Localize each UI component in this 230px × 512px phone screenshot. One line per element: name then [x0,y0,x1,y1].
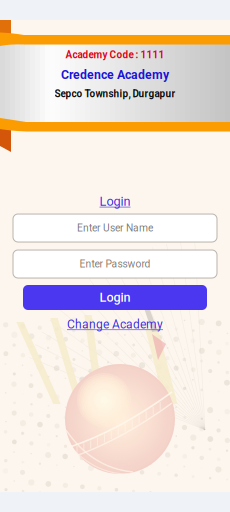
staticText: Academy Code : 1111 [65,49,164,61]
staticText: Enter Password [79,258,150,270]
button[interactable]: Login [99,195,130,208]
button[interactable]: Change Academy [67,318,163,331]
staticText: Credence Academy [61,68,169,82]
staticText: Sepco Township, Durgapur [54,88,175,100]
button[interactable]: Login [23,285,207,310]
staticText: Login [99,194,130,209]
staticText: Change Academy [67,317,163,332]
staticText: Login [99,290,130,305]
staticText: Enter User Name [77,222,153,234]
